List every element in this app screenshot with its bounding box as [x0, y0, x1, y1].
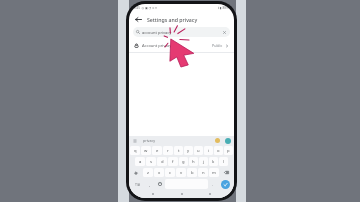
- button[interactable]: Keyboard toolbar: [132, 138, 137, 143]
- staticText: .: [212, 182, 214, 187]
- button[interactable]: l: [219, 157, 228, 166]
- staticText: a: [139, 159, 142, 165]
- staticText: Settings and privacy: [147, 16, 198, 23]
- button[interactable]: y: [184, 146, 193, 155]
- button[interactable]: t: [174, 146, 183, 155]
- button[interactable]: Recents: [149, 190, 157, 198]
- button[interactable]: d: [157, 157, 167, 166]
- button[interactable]: Home: [178, 190, 186, 198]
- staticText: r: [167, 148, 169, 154]
- staticText: x: [158, 170, 161, 176]
- button[interactable]: Account privacy: [134, 39, 229, 52]
- button[interactable]: Clear search: [222, 30, 227, 35]
- staticText: Public: [212, 43, 223, 48]
- staticText: c: [169, 170, 172, 176]
- staticText: o: [217, 148, 220, 154]
- button[interactable]: Emoji: [215, 138, 220, 143]
- button[interactable]: e: [152, 146, 162, 155]
- button[interactable]: x: [154, 168, 164, 177]
- staticText: s: [150, 159, 153, 165]
- staticText: j: [203, 159, 205, 165]
- staticText: z: [147, 170, 149, 176]
- button[interactable]: Emoji keyboard: [155, 179, 164, 189]
- button[interactable]: b: [187, 168, 197, 177]
- staticText: y: [187, 148, 190, 154]
- button[interactable]: u: [194, 146, 203, 155]
- button[interactable]: !1#: [130, 179, 145, 189]
- button[interactable]: Back: [206, 190, 214, 198]
- staticText: t: [178, 148, 180, 154]
- staticText: ,: [149, 182, 151, 187]
- button[interactable]: privacy: [143, 138, 156, 143]
- button[interactable]: h: [189, 157, 198, 166]
- staticText: q: [134, 148, 137, 154]
- button[interactable]: p: [224, 146, 233, 155]
- staticText: p: [227, 148, 230, 154]
- staticText: h: [192, 159, 195, 165]
- staticText: l: [223, 159, 225, 165]
- staticText: privacy: [143, 138, 156, 143]
- button[interactable]: Shift: [130, 168, 142, 177]
- button[interactable]: a: [135, 157, 145, 166]
- button[interactable]: g: [179, 157, 188, 166]
- staticText: u: [197, 148, 200, 154]
- button[interactable]: Voice input: [225, 138, 231, 144]
- other: Tap indicator: [157, 26, 203, 62]
- button[interactable]: w: [141, 146, 151, 155]
- staticText: k: [212, 159, 215, 165]
- staticText: b: [191, 170, 194, 176]
- button[interactable]: s: [146, 157, 156, 166]
- button[interactable]: q: [130, 146, 140, 155]
- button[interactable]: m: [209, 168, 219, 177]
- staticText: g: [182, 159, 185, 165]
- button[interactable]: j: [199, 157, 208, 166]
- staticText: m: [212, 170, 216, 176]
- button[interactable]: Backspace: [220, 168, 233, 177]
- staticText: !1#: [135, 182, 141, 187]
- button[interactable]: i: [204, 146, 213, 155]
- button[interactable]: Back: [134, 15, 143, 24]
- button[interactable]: r: [163, 146, 173, 155]
- staticText: v: [180, 170, 183, 176]
- staticText: e: [156, 148, 159, 154]
- button[interactable]: Search: [221, 180, 230, 189]
- button[interactable]: c: [165, 168, 175, 177]
- staticText: Account privacy: [142, 43, 172, 48]
- staticText: ⦀ ▮ 88%: [218, 6, 229, 10]
- button[interactable]: n: [198, 168, 208, 177]
- staticText: i: [208, 148, 210, 154]
- button[interactable]: o: [214, 146, 223, 155]
- staticText: d: [161, 159, 164, 165]
- button[interactable]: ,: [146, 179, 154, 189]
- staticText: account privacy: [142, 30, 172, 35]
- staticText: f: [172, 159, 174, 165]
- button[interactable]: v: [176, 168, 186, 177]
- button[interactable]: k: [209, 157, 218, 166]
- button[interactable]: account privacy: [136, 27, 227, 37]
- staticText: n: [202, 170, 205, 176]
- staticText: w: [144, 148, 148, 154]
- button[interactable]: z: [143, 168, 153, 177]
- staticText: 8:45 ◎ ▣ ◔ ⊙ ▾: [134, 6, 157, 10]
- button[interactable]: f: [168, 157, 178, 166]
